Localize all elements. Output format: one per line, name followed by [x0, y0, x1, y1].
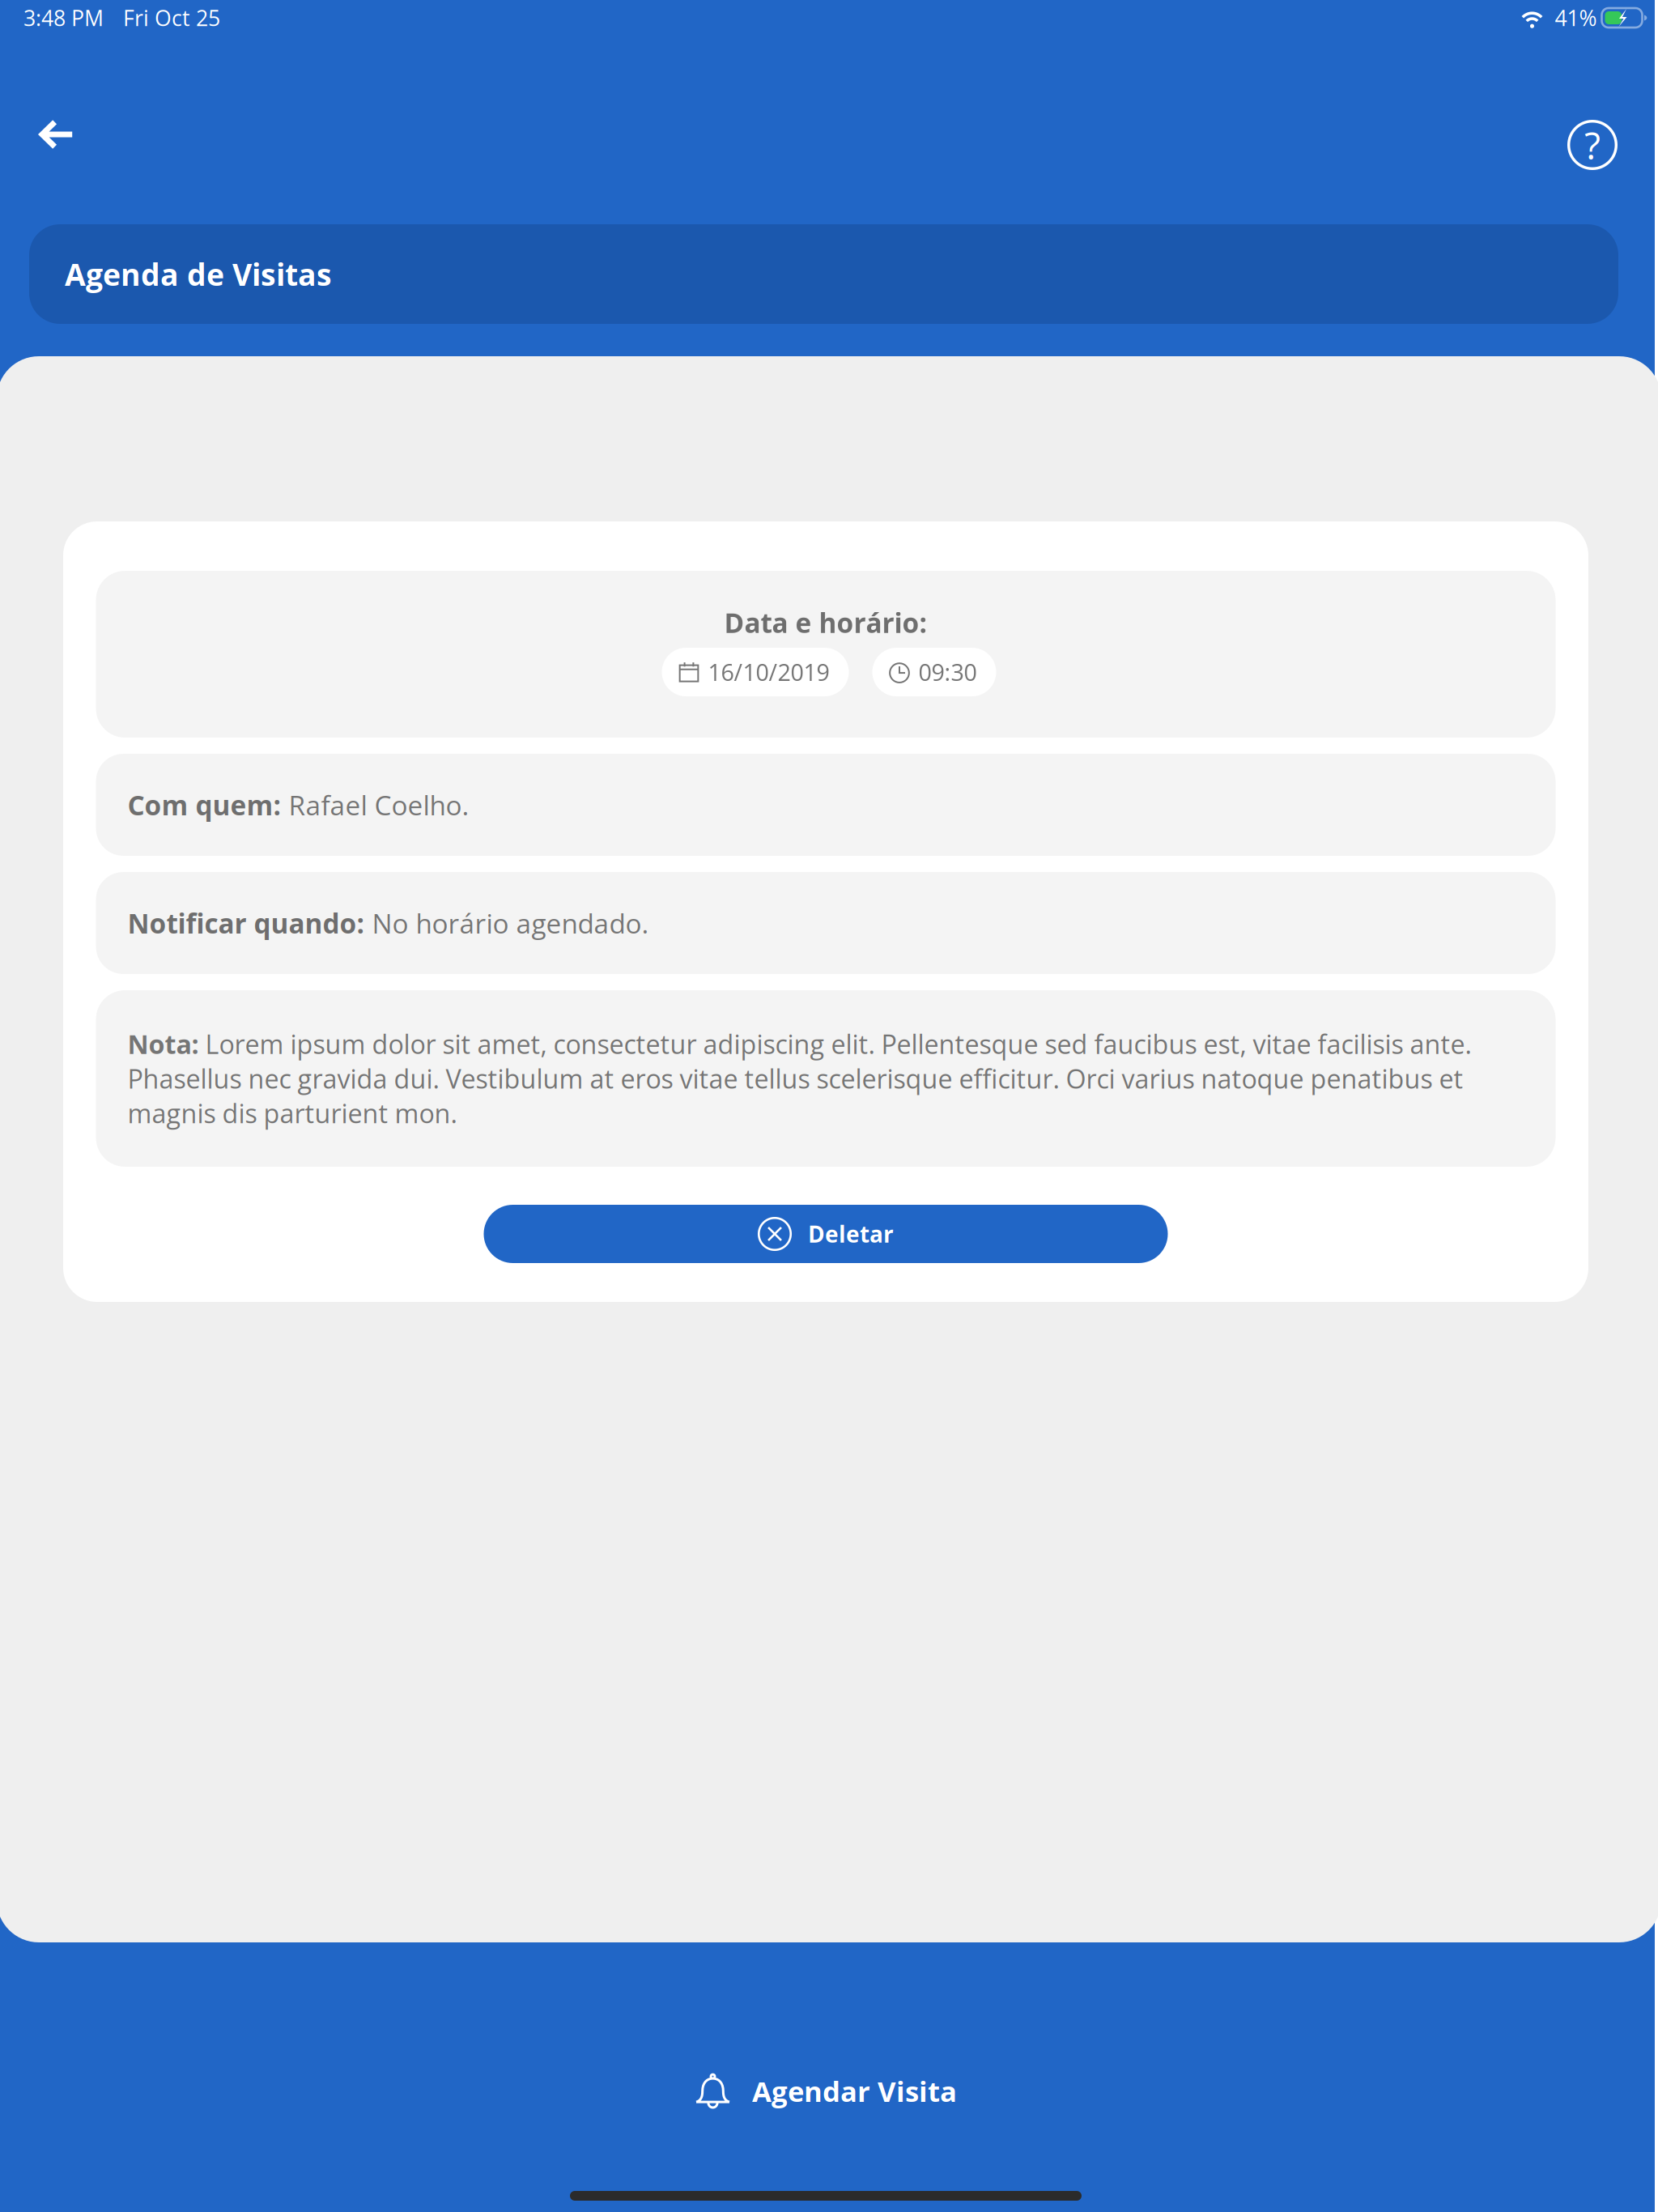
staticText: Nota: Lorem ipsum dolor sit amet, consec… — [128, 1026, 1471, 1130]
staticText: Agendar Visita — [752, 2072, 957, 2110]
staticText: Data e horário: — [724, 604, 927, 641]
staticText: 09:30 — [918, 656, 977, 688]
staticText: Deletar — [808, 1218, 894, 1249]
button[interactable]: Back — [20, 108, 93, 181]
staticText: ? — [1584, 119, 1601, 170]
staticText: No horário agendado. — [365, 905, 649, 941]
button[interactable]: Agendar Visita — [675, 2059, 976, 2123]
staticText: Com quem: — [128, 786, 281, 823]
staticText: Notificar quando: — [128, 905, 365, 941]
staticText: 3:48 PM — [23, 3, 104, 32]
staticText: Agenda de Visitas — [65, 254, 332, 295]
button[interactable]: Deletar — [484, 1205, 1168, 1263]
staticText: 41% — [1555, 3, 1597, 32]
staticText: 16/10/2019 — [708, 656, 829, 688]
staticText: Fri Oct 25 — [123, 3, 220, 32]
staticText: Rafael Coelho. — [281, 786, 469, 823]
button[interactable]: Help — [1556, 108, 1629, 181]
